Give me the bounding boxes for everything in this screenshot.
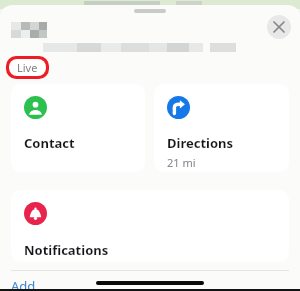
button[interactable]: Live (6, 56, 49, 79)
staticText: Live (17, 60, 38, 75)
staticText: Notifications (24, 241, 109, 259)
staticText: Add (11, 277, 36, 291)
staticText: 21 mi (167, 155, 196, 170)
button[interactable]: Add (9, 275, 38, 291)
button[interactable]: Directions (154, 84, 289, 172)
staticText: Contact (24, 134, 75, 152)
button[interactable]: Notifications (11, 190, 289, 262)
button[interactable]: Contact (11, 84, 145, 172)
staticText: Directions (167, 134, 234, 152)
button[interactable]: Close (267, 15, 291, 39)
